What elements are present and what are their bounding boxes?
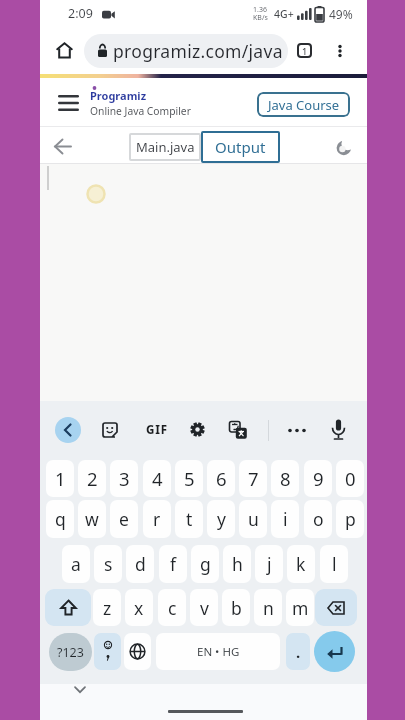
button[interactable] [315, 589, 357, 626]
button[interactable]: 9 [304, 460, 332, 497]
staticText: p [345, 507, 356, 531]
button[interactable] [45, 589, 91, 626]
staticText: z [103, 596, 112, 620]
button[interactable]: b [222, 589, 250, 626]
staticText: m [292, 596, 309, 620]
button[interactable]: 0 [336, 460, 364, 497]
button[interactable]: 5 [175, 460, 203, 497]
staticText: 4G+ [274, 7, 294, 21]
staticText: n [263, 596, 274, 620]
button[interactable]: r [143, 500, 171, 538]
button[interactable]: 6 [207, 460, 235, 497]
button[interactable]: Java Course [257, 92, 350, 117]
button[interactable] [229, 421, 247, 439]
button[interactable] [287, 427, 307, 434]
button[interactable]: e [110, 500, 138, 538]
button[interactable]: l [320, 545, 348, 583]
staticText: Output [215, 137, 266, 157]
staticText: g [200, 552, 211, 576]
staticText: k [296, 552, 306, 576]
staticText: b [231, 596, 242, 620]
button[interactable] [55, 41, 74, 60]
staticText: l [332, 552, 337, 576]
button[interactable]: ?123 [49, 633, 92, 671]
button[interactable]: 3 [110, 460, 138, 497]
staticText: Programiz [90, 88, 147, 103]
button[interactable]: k [287, 545, 315, 583]
button[interactable] [124, 633, 151, 670]
button[interactable]: x [125, 589, 153, 626]
button[interactable]: y [207, 500, 235, 538]
staticText: q [55, 507, 66, 531]
button[interactable]: w [78, 500, 106, 538]
button[interactable]: . [286, 633, 310, 670]
staticText: h [232, 552, 243, 576]
button[interactable]: 2 [78, 460, 106, 497]
button[interactable]: s [94, 545, 122, 583]
button[interactable]: 7 [239, 460, 267, 497]
button[interactable]: h [223, 545, 251, 583]
staticText: j [267, 552, 272, 576]
staticText: . [296, 642, 301, 662]
button[interactable]: g [191, 545, 219, 583]
staticText: ?123 [57, 644, 84, 661]
button[interactable]: programiz.com/java [84, 34, 288, 68]
button[interactable]: p [336, 500, 364, 538]
button[interactable] [336, 139, 353, 156]
staticText: 5 [184, 466, 195, 491]
button[interactable]: i [271, 500, 299, 538]
staticText: a [71, 552, 81, 576]
button[interactable] [102, 422, 118, 438]
button[interactable]: o [304, 500, 332, 538]
button[interactable]: q [46, 500, 74, 538]
button[interactable] [314, 631, 355, 672]
staticText: s [104, 552, 113, 576]
button[interactable]: f [159, 545, 187, 583]
staticText: 8 [280, 466, 291, 491]
staticText: y [217, 507, 226, 531]
staticText: 49% [329, 6, 353, 22]
staticText: Online Java Compiler [90, 104, 191, 118]
staticText: 1 [302, 45, 308, 57]
button[interactable]: a [62, 545, 90, 583]
staticText: w [85, 507, 99, 531]
button[interactable]: t [175, 500, 203, 538]
button[interactable]: 4 [143, 460, 171, 497]
staticText: f [170, 552, 177, 576]
button[interactable]: d [126, 545, 154, 583]
button[interactable]: j [255, 545, 283, 583]
button[interactable]: v [190, 589, 218, 626]
button[interactable]: z [93, 589, 121, 626]
staticText: 3 [119, 466, 130, 491]
button[interactable]: m [286, 589, 314, 626]
staticText: 0 [345, 466, 356, 491]
button[interactable] [94, 633, 121, 670]
staticText: 7 [248, 466, 259, 491]
button[interactable] [74, 686, 86, 694]
button[interactable] [58, 94, 79, 112]
button[interactable] [189, 421, 206, 438]
staticText: d [135, 552, 146, 576]
button[interactable]: u [239, 500, 267, 538]
button[interactable]: 1 [46, 460, 74, 497]
button[interactable]: Main.java [129, 133, 201, 161]
button[interactable] [53, 137, 73, 156]
staticText: KB/s [253, 13, 268, 22]
button[interactable] [334, 41, 346, 61]
button[interactable]: EN • HG [156, 633, 280, 670]
button[interactable] [331, 419, 346, 442]
button[interactable]: 8 [271, 460, 299, 497]
staticText: Java Course [268, 96, 340, 114]
staticText: GIF [146, 422, 168, 438]
staticText: 2:09 [68, 5, 93, 22]
staticText: t [186, 507, 193, 531]
staticText: 1 [55, 466, 66, 491]
staticText: 4 [152, 466, 163, 491]
button[interactable]: 1 [297, 43, 312, 58]
staticText: programiz.com/java [113, 39, 283, 63]
staticText: 6 [216, 466, 227, 491]
button[interactable]: n [254, 589, 282, 626]
button[interactable]: Output [201, 131, 280, 163]
button[interactable] [55, 417, 81, 443]
button[interactable]: c [158, 589, 186, 626]
